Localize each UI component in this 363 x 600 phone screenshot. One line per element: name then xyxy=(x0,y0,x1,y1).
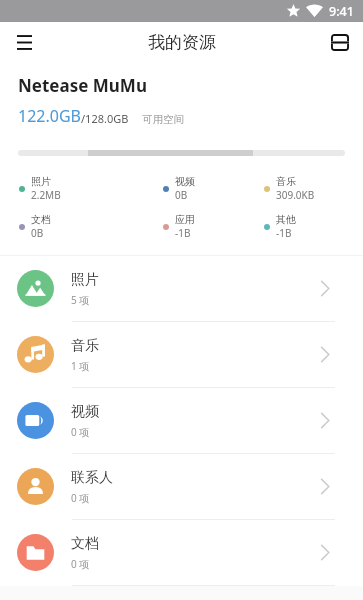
staticText: 0B xyxy=(175,188,188,202)
staticText: 0 项 xyxy=(71,557,90,571)
staticText: 122.0GB xyxy=(18,105,81,127)
staticText: 2.2MB xyxy=(31,188,61,202)
staticText: 我的资源 xyxy=(148,32,216,53)
staticText: -1B xyxy=(175,226,191,240)
staticText: 309.0KB xyxy=(276,188,315,202)
button[interactable]: 音乐 xyxy=(0,322,363,387)
staticText: 0 项 xyxy=(71,425,90,439)
button[interactable]: 视频 xyxy=(0,388,363,453)
staticText: 视频 xyxy=(71,403,99,421)
staticText: 9:41 xyxy=(329,3,354,20)
button[interactable]: Menu xyxy=(8,26,40,58)
staticText: 文档 xyxy=(71,535,99,553)
staticText: 5 项 xyxy=(71,293,90,307)
staticText: 联系人 xyxy=(71,469,113,487)
staticText: 音乐 xyxy=(71,337,99,355)
staticText: 应用 xyxy=(175,213,195,226)
button[interactable]: 联系人 xyxy=(0,454,363,519)
staticText: 照片 xyxy=(31,175,51,188)
button[interactable]: 文档 xyxy=(0,520,363,585)
button[interactable]: Scan xyxy=(324,26,356,58)
staticText: 文档 xyxy=(31,213,51,226)
staticText: 0 项 xyxy=(71,491,90,505)
staticText: Netease MuMu xyxy=(18,74,147,97)
button[interactable]: 照片 xyxy=(0,256,363,321)
staticText: -1B xyxy=(276,226,292,240)
staticText: /128.0GB xyxy=(81,111,129,126)
staticText: 可用空间 xyxy=(142,113,184,126)
staticText: 照片 xyxy=(71,271,99,289)
staticText: 0B xyxy=(31,226,44,240)
staticText: 音乐 xyxy=(276,175,296,188)
staticText: 视频 xyxy=(175,175,195,188)
staticText: 1 项 xyxy=(71,359,90,373)
staticText: 其他 xyxy=(276,213,296,226)
